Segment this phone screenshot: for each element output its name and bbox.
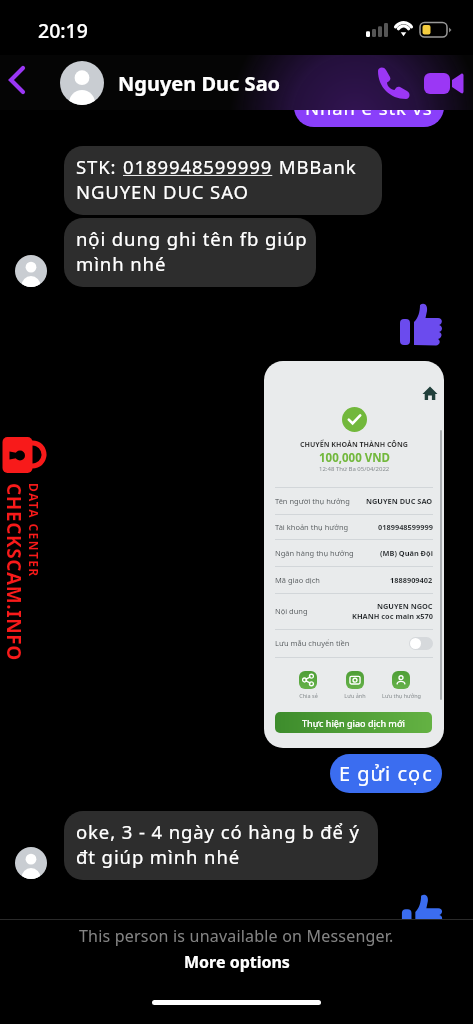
staticText: 0189948599999 <box>123 154 273 179</box>
button[interactable]: Back <box>0 61 44 105</box>
staticText: Nội dung <box>275 606 308 616</box>
staticText: NGUYEN NGOC <box>377 601 433 611</box>
staticText: Mã giao dịch <box>275 575 320 585</box>
button[interactable]: Nguyen Duc Sao <box>60 61 281 105</box>
button[interactable]: Nhắn e stk vs <box>294 87 444 127</box>
staticText: Ngân hàng thụ hưởng <box>275 548 354 558</box>
button[interactable]: CHUYỂN KHOẢN THÀNH CÔNG <box>264 361 444 748</box>
staticText: 1888909402 <box>390 575 433 585</box>
button[interactable]: nội dung ghi tên fb giúp <box>64 218 316 287</box>
staticText: More options <box>184 951 290 973</box>
staticText: 20:19 <box>38 17 88 44</box>
staticText: NGUYEN DUC SAO <box>76 179 249 204</box>
staticText: 100,000 VND <box>319 450 390 466</box>
button[interactable]: Call <box>368 61 412 105</box>
button[interactable] <box>346 671 364 689</box>
staticText: CHECKSCAM.INFO <box>1 483 27 661</box>
staticText: nội dung ghi tên fb giúp <box>76 226 308 251</box>
button[interactable] <box>299 671 317 689</box>
staticText: Lưu thụ hưởng <box>382 692 421 699</box>
button[interactable]: More options <box>184 951 290 973</box>
staticText: 0189948599999 <box>378 522 433 532</box>
staticText: MBBank <box>273 154 357 179</box>
button[interactable] <box>409 637 433 650</box>
staticText: CHUYỂN KHOẢN THÀNH CÔNG <box>300 439 408 449</box>
staticText: Chia sẻ <box>299 692 318 699</box>
staticText: E gửi cọc <box>339 760 433 787</box>
staticText: oke, 3 - 4 ngày có hàng b để ý <box>76 819 360 844</box>
staticText: đt giúp mình nhé <box>76 844 241 869</box>
staticText: Tên người thụ hưởng <box>275 496 350 506</box>
staticText: Lưu ảnh <box>344 692 366 699</box>
staticText: NGUYEN DUC SAO <box>366 496 433 506</box>
staticText: Tài khoản thụ hưởng <box>275 522 349 532</box>
staticText: STK: <box>76 154 123 179</box>
button[interactable]: Thực hiện giao dịch mới <box>275 712 432 733</box>
staticText: 12:48 Thứ Ba 05/04/2022 <box>319 465 390 473</box>
button[interactable]: E gửi cọc <box>330 754 442 793</box>
staticText: Lưu mẫu chuyển tiền <box>275 638 350 648</box>
staticText: This person is unavailable on Messenger. <box>79 925 394 947</box>
button[interactable]: STK: <box>64 146 382 215</box>
staticText: mình nhé <box>76 251 167 276</box>
button[interactable]: oke, 3 - 4 ngày có hàng b để ý <box>64 811 378 880</box>
staticText: DATA CENTER <box>26 483 42 578</box>
staticText: (MB) Quân Đội <box>380 548 433 558</box>
button[interactable] <box>392 671 410 689</box>
staticText: Nhắn e stk vs <box>305 95 433 120</box>
button[interactable]: Video call <box>421 61 465 105</box>
staticText: Thực hiện giao dịch mới <box>302 717 406 729</box>
staticText: Nguyen Duc Sao <box>118 70 281 97</box>
staticText: KHANH coc main x570 <box>352 611 433 621</box>
